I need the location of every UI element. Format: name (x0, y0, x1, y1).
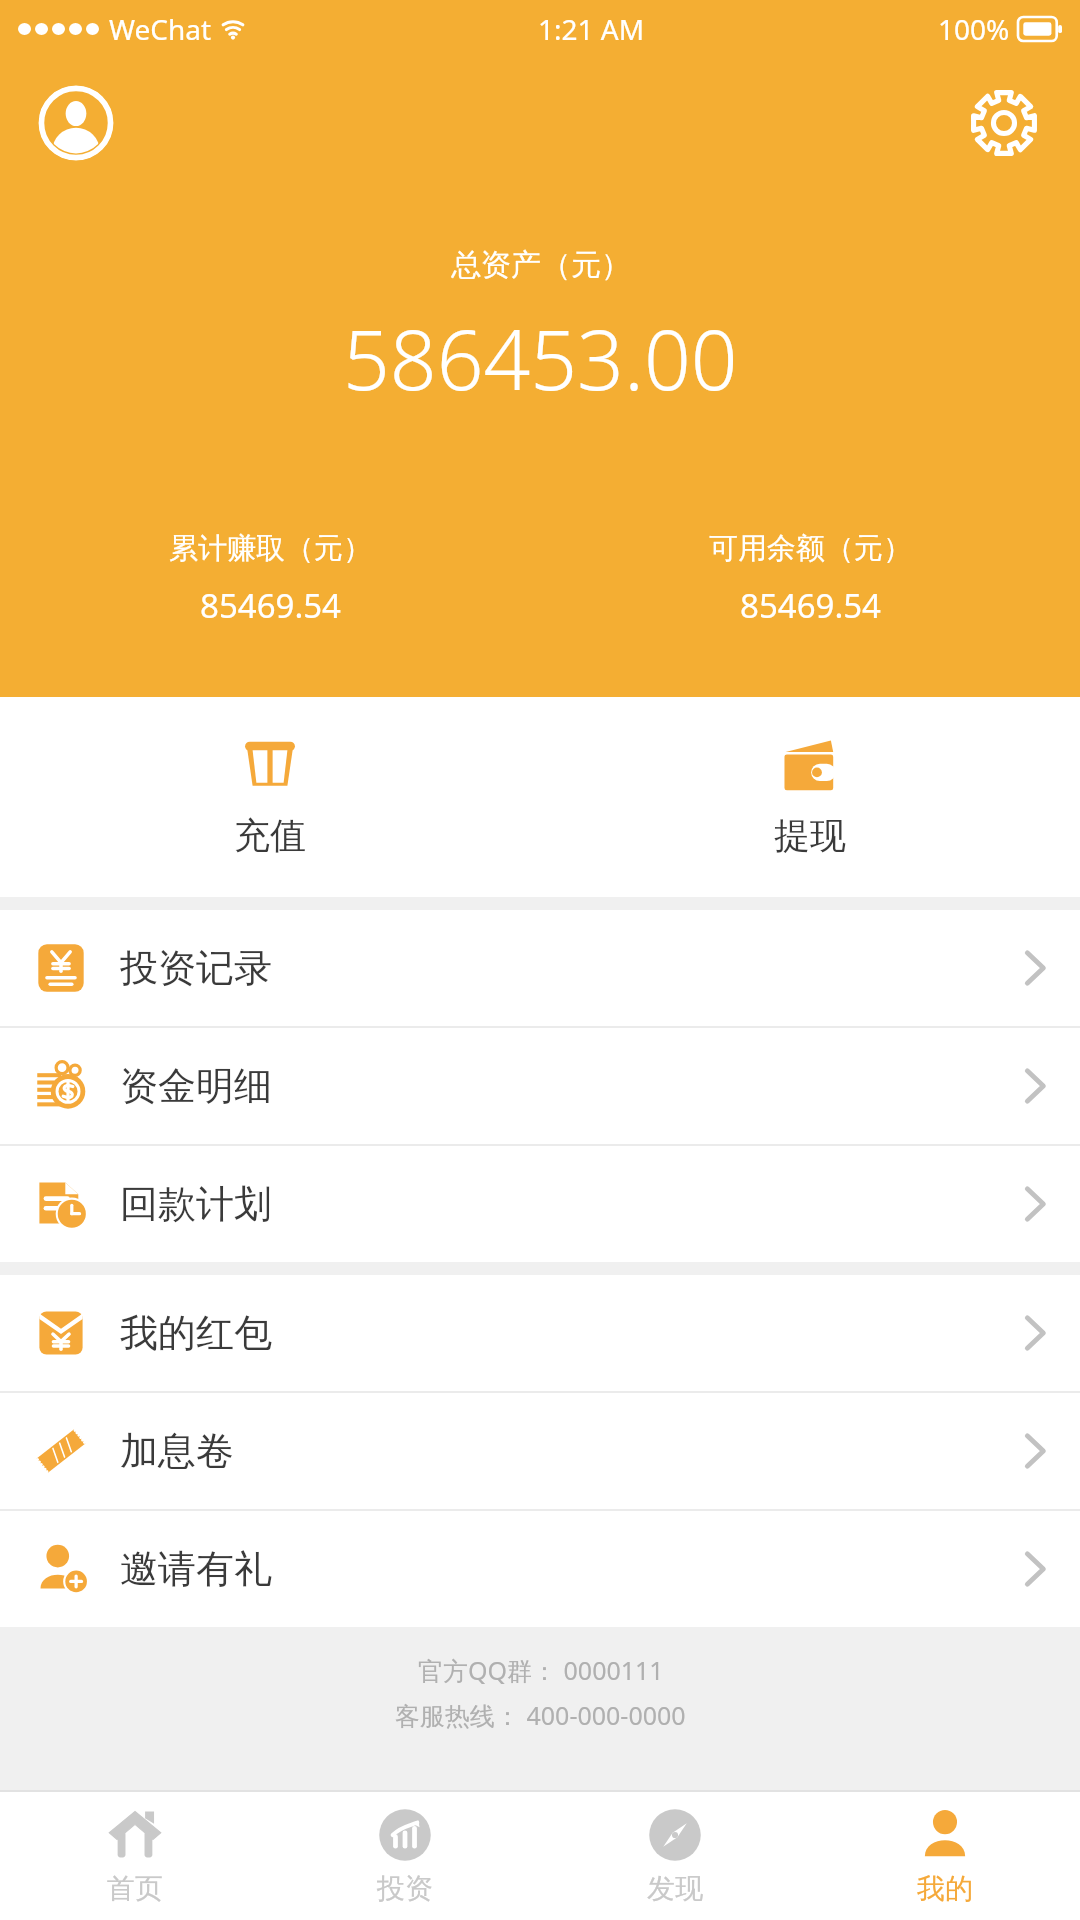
staticText: 回款计划 (120, 1180, 272, 1228)
staticText: 首页 (107, 1871, 163, 1906)
button[interactable]: 发现 (540, 1792, 810, 1920)
staticText: 发现 (647, 1871, 703, 1906)
button[interactable]: 充值 (0, 697, 540, 897)
staticText: 资金明细 (120, 1062, 272, 1110)
staticText: 客服热线： 400-000-0000 (395, 1698, 686, 1732)
staticText: 提现 (774, 813, 846, 858)
staticText: WeChat (109, 10, 212, 48)
button[interactable]: 投资记录 (0, 910, 1080, 1026)
button[interactable]: Profile (38, 85, 114, 161)
staticText: 我的 (917, 1871, 973, 1906)
staticText: 总资产（元） (451, 246, 631, 284)
staticText: 100% (938, 10, 1010, 48)
staticText: 85469.54 (740, 583, 881, 628)
staticText: 85469.54 (200, 583, 341, 628)
button[interactable]: 我的 (810, 1792, 1080, 1920)
button[interactable]: 提现 (540, 697, 1080, 897)
staticText: 累计赚取（元） (169, 530, 372, 567)
staticText: 加息卷 (120, 1427, 234, 1475)
button[interactable]: 首页 (0, 1792, 270, 1920)
staticText: 可用余额（元） (709, 530, 912, 567)
staticText: 投资 (377, 1871, 433, 1906)
staticText: 官方QQ群： 0000111 (418, 1653, 664, 1687)
staticText: 我的红包 (120, 1309, 272, 1357)
button[interactable]: 邀请有礼 (0, 1511, 1080, 1627)
button[interactable]: Settings (966, 85, 1042, 161)
staticText: 充值 (234, 813, 306, 858)
button[interactable]: 回款计划 (0, 1146, 1080, 1262)
button[interactable]: 投资 (270, 1792, 540, 1920)
button[interactable]: 加息卷 (0, 1393, 1080, 1509)
button[interactable]: 资金明细 (0, 1028, 1080, 1144)
staticText: 邀请有礼 (120, 1545, 272, 1593)
staticText: 586453.00 (343, 302, 738, 414)
staticText: 1:21 AM (538, 10, 645, 48)
staticText: 投资记录 (120, 944, 272, 992)
button[interactable]: 我的红包 (0, 1275, 1080, 1391)
